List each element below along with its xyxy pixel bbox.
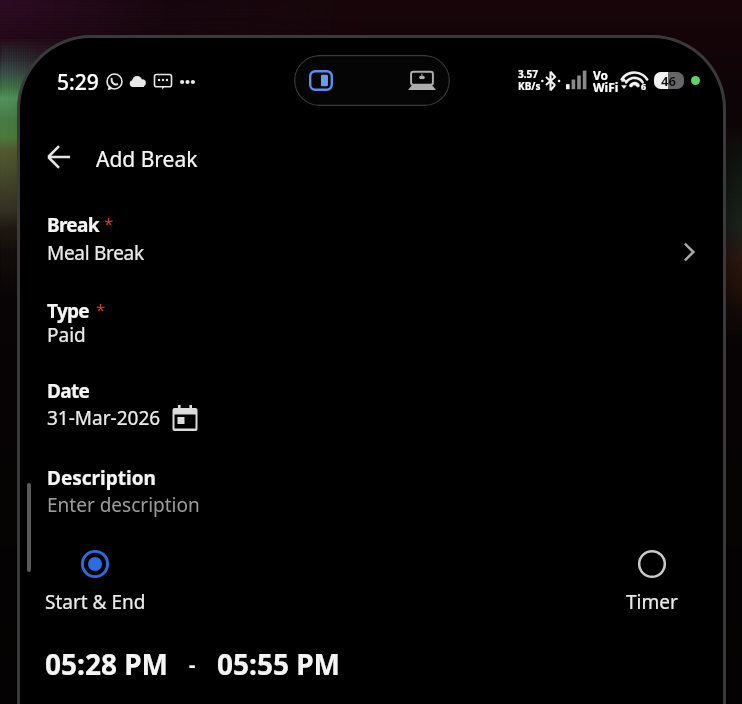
staticText: * (96, 298, 106, 321)
staticText: * (104, 212, 114, 235)
staticText: Paid (47, 322, 86, 348)
button[interactable]: Back (39, 137, 79, 177)
staticText: KB/s (518, 79, 541, 93)
staticText: 5:29 (57, 68, 99, 97)
staticText: 31-Mar-2026 (47, 405, 161, 431)
button[interactable]: Break: Meal Break (40, 206, 706, 272)
staticText: WiFi (593, 79, 619, 95)
staticText: Type (47, 298, 89, 324)
button[interactable]: Pick date (172, 405, 198, 431)
staticText: - (189, 651, 196, 678)
staticText: 05:55 PM (217, 645, 341, 683)
staticText: 46 (661, 72, 676, 89)
button[interactable]: Type: Paid (40, 293, 706, 355)
button[interactable]: 05:28 PM (45, 645, 169, 683)
staticText: 05:28 PM (45, 645, 169, 683)
button[interactable]: Start & End (45, 550, 175, 615)
staticText: Timer (626, 589, 678, 615)
staticText: Start & End (45, 589, 146, 615)
button[interactable]: Description (40, 458, 706, 518)
staticText: Description (47, 465, 156, 491)
staticText: 6 (641, 80, 647, 92)
button[interactable]: Timer (588, 550, 716, 615)
staticText: Add Break (96, 145, 198, 174)
staticText: Vo (593, 67, 609, 83)
staticText: 3.57 (518, 67, 538, 81)
staticText: Date (47, 378, 90, 404)
staticText: Meal Break (47, 240, 144, 266)
staticText: Break (47, 212, 99, 238)
button[interactable]: Select break (668, 230, 712, 274)
button[interactable]: Date: 31-Mar-2026 (40, 371, 706, 433)
staticText: Enter description (47, 492, 200, 518)
button[interactable]: 05:55 PM (217, 645, 341, 683)
